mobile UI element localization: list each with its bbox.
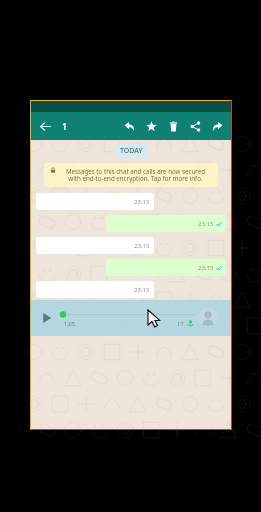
button[interactable]: Star: [143, 118, 159, 134]
button[interactable]: 23:15: [36, 237, 154, 254]
staticText: 23:15: [134, 198, 150, 206]
button[interactable]: 23:15: [36, 281, 154, 298]
button[interactable]: Delete: [165, 118, 181, 134]
staticText: 23:15: [134, 242, 150, 250]
button[interactable]: Forward: [209, 118, 225, 134]
button[interactable]: Reply: [121, 118, 137, 134]
button[interactable]: 23:15: [106, 259, 226, 276]
staticText: 17: [177, 320, 184, 327]
staticText: 1: [62, 120, 68, 132]
button[interactable]: 23:15: [36, 193, 154, 210]
button[interactable]: Play: [40, 311, 54, 325]
button[interactable]: Back: [37, 118, 53, 134]
button[interactable]: 23:15: [106, 215, 226, 232]
button[interactable]: Share: [187, 118, 203, 134]
staticText: 1:05: [64, 320, 75, 327]
staticText: TODAY: [120, 146, 143, 156]
staticText: 23:15: [134, 286, 150, 294]
staticText: 23:15: [198, 264, 214, 272]
button[interactable]: Play: [30, 300, 232, 336]
staticText: Messages to this chat and calls are now …: [59, 167, 212, 183]
staticText: 23:15: [198, 220, 214, 228]
